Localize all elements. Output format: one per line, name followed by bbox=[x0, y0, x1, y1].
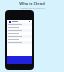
button[interactable]: More bbox=[7, 20, 32, 23]
button[interactable] bbox=[7, 23, 32, 26]
button[interactable] bbox=[7, 26, 32, 29]
button[interactable] bbox=[7, 38, 32, 41]
button[interactable] bbox=[7, 32, 32, 35]
button[interactable] bbox=[7, 41, 32, 44]
staticText: a simple app for everyone bbox=[20, 7, 45, 10]
staticText: Who is Cleod bbox=[19, 1, 45, 6]
button[interactable] bbox=[7, 35, 32, 38]
button[interactable] bbox=[7, 29, 32, 32]
